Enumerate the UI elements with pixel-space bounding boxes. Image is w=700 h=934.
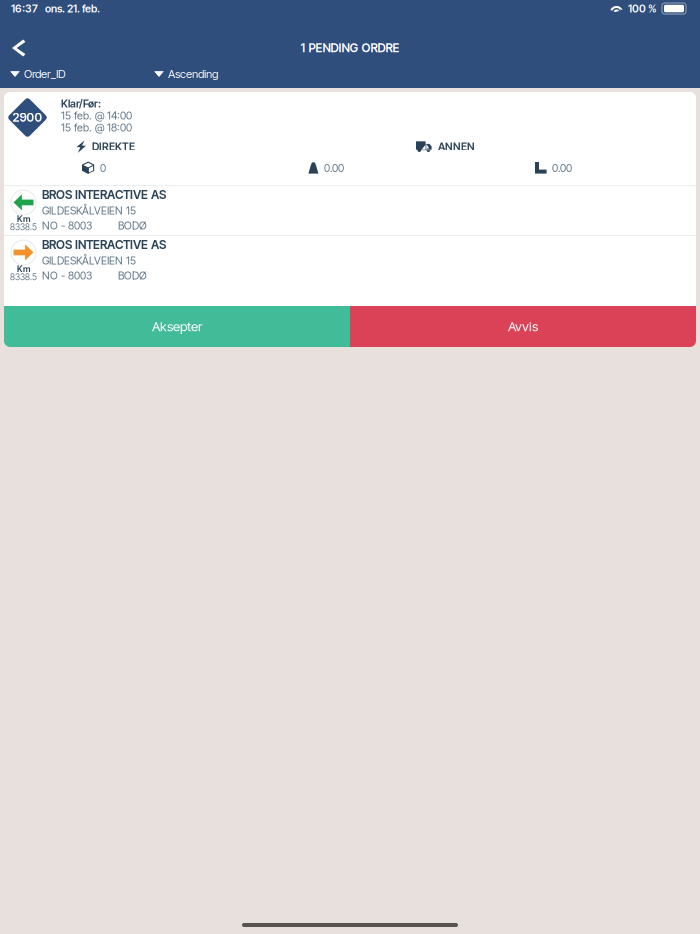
- staticText: GILDESKÅLVEIEN 15: [42, 204, 136, 217]
- staticText: BODØ: [118, 219, 147, 232]
- staticText: Aksepter: [152, 318, 202, 334]
- staticText: 1 PENDING ORDRE: [300, 41, 399, 55]
- staticText: Klar/Før:: [61, 97, 101, 110]
- button[interactable]: Avvis: [350, 306, 696, 347]
- button[interactable]: Ascending: [154, 64, 314, 84]
- staticText: 2900: [12, 110, 42, 125]
- staticText: 16:37: [11, 2, 38, 15]
- button[interactable]: Km: [4, 236, 696, 285]
- staticText: 0.00: [324, 161, 344, 174]
- staticText: 0: [100, 161, 106, 174]
- staticText: ons. 21. feb.: [45, 2, 100, 15]
- staticText: NO - 8003: [42, 219, 92, 232]
- staticText: BODØ: [118, 269, 147, 282]
- staticText: Avvis: [508, 318, 538, 334]
- staticText: 15 feb. @ 18:00: [61, 121, 132, 134]
- button[interactable]: Aksepter: [4, 306, 350, 347]
- button[interactable]: Back: [0, 32, 40, 64]
- staticText: Ascending: [168, 67, 218, 81]
- staticText: BROS INTERACTIVE AS: [42, 187, 166, 202]
- staticText: NO - 8003: [42, 269, 92, 282]
- staticText: BROS INTERACTIVE AS: [42, 237, 166, 252]
- staticText: ANNEN: [438, 140, 475, 153]
- staticText: 8338.5: [10, 222, 37, 232]
- button[interactable]: Order_ID: [10, 64, 154, 84]
- staticText: DIREKTE: [92, 140, 135, 153]
- staticText: Order_ID: [24, 67, 66, 81]
- staticText: 15 feb. @ 14:00: [61, 109, 132, 122]
- staticText: 8338.5: [10, 272, 37, 282]
- button[interactable]: Km: [4, 186, 696, 235]
- staticText: Km: [17, 214, 30, 224]
- staticText: Km: [17, 264, 30, 274]
- staticText: GILDESKÅLVEIEN 15: [42, 254, 136, 267]
- staticText: 0.00: [552, 161, 572, 174]
- staticText: 100 %: [628, 2, 657, 15]
